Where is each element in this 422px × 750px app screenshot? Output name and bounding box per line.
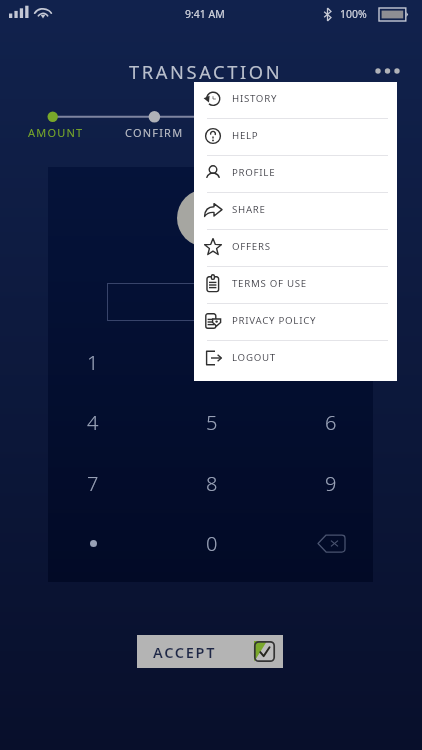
button[interactable]: HELP [194, 117, 397, 154]
staticText: SHARE [232, 203, 266, 216]
staticText: TERMS OF USE [232, 277, 307, 290]
button[interactable]: LOGOUT [194, 339, 397, 376]
button[interactable]: 7 [38, 453, 148, 513]
button[interactable]: SHARE [194, 191, 397, 228]
other: Decimal point [90, 540, 97, 547]
button[interactable]: 9 [276, 453, 386, 513]
button[interactable]: 0 [157, 513, 267, 573]
staticText: OFFERS [232, 240, 271, 253]
staticText: ACCEPT [153, 642, 217, 662]
button[interactable]: 6 [276, 392, 386, 452]
staticText: 7 [87, 470, 99, 497]
button[interactable]: More options [368, 57, 408, 85]
staticText: 8 [206, 470, 218, 497]
staticText: 5 [206, 409, 218, 436]
staticText: CONFIRM [125, 125, 184, 140]
button[interactable]: PRIVACY POLICY [194, 302, 397, 339]
button[interactable]: Decimal point [38, 513, 148, 573]
button[interactable]: PROFILE [194, 154, 397, 191]
button[interactable]: 2 [157, 332, 267, 392]
button[interactable]: ACCEPT [137, 635, 283, 668]
staticText: HISTORY [232, 92, 278, 105]
button[interactable]: 4 [38, 392, 148, 452]
staticText: 9:41 AM [185, 7, 225, 21]
staticText: LOGOUT [232, 351, 276, 364]
staticText: 2 [206, 349, 218, 376]
button[interactable]: OFFERS [194, 228, 397, 265]
staticText: 0 [206, 530, 218, 557]
staticText: TRANSACTION [129, 59, 283, 84]
staticText: 9 [325, 470, 337, 497]
staticText: 4 [87, 409, 99, 436]
button[interactable]: TERMS OF USE [194, 265, 397, 302]
staticText: 6 [325, 409, 337, 436]
button[interactable]: HISTORY [194, 80, 397, 117]
staticText: HELP [232, 129, 259, 142]
staticText: 1 [87, 349, 99, 376]
staticText: 100% [340, 7, 367, 21]
staticText: PROFILE [232, 166, 276, 179]
button[interactable]: 5 [157, 392, 267, 452]
other: Backspace [318, 535, 345, 552]
staticText: PRIVACY POLICY [232, 314, 317, 327]
staticText: AMOUNT [28, 125, 84, 140]
button[interactable]: 1 [38, 332, 148, 392]
button[interactable]: 3 [276, 332, 386, 392]
button[interactable]: 8 [157, 453, 267, 513]
button[interactable]: Backspace [276, 513, 386, 573]
